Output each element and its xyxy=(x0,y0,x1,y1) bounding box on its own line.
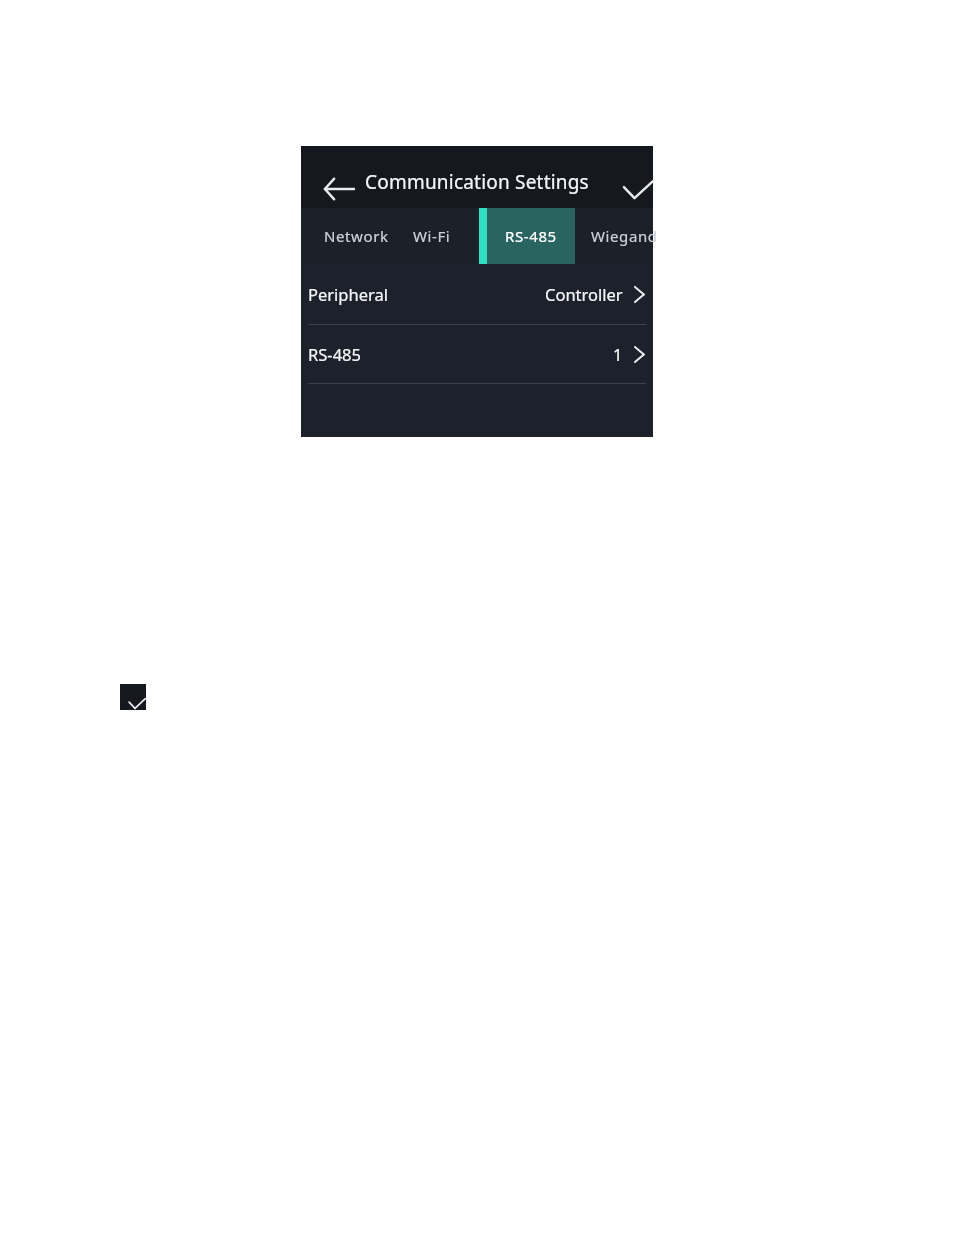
button[interactable]: RS-485 xyxy=(301,325,653,383)
button[interactable]: Wiegand xyxy=(583,208,653,264)
button[interactable]: Back xyxy=(308,156,354,200)
button[interactable]: Confirm xyxy=(610,156,654,200)
staticText: Peripheral xyxy=(308,283,389,305)
staticText: RS-485 xyxy=(308,343,361,365)
button[interactable]: Peripheral xyxy=(301,264,653,324)
staticText: Controller xyxy=(545,283,623,305)
staticText: RS-485 xyxy=(505,226,557,246)
button[interactable]: Confirm icon xyxy=(120,684,146,710)
button[interactable]: RS-485 xyxy=(487,208,575,264)
staticText: 1 xyxy=(613,343,623,365)
staticText: Wi-Fi xyxy=(413,226,451,246)
staticText: Wiegand xyxy=(591,226,658,246)
button[interactable]: Network xyxy=(315,208,397,264)
button[interactable] xyxy=(479,208,575,264)
button[interactable]: Wi-Fi xyxy=(404,208,460,264)
staticText: Communication Settings xyxy=(301,169,653,201)
staticText: Network xyxy=(324,226,389,246)
